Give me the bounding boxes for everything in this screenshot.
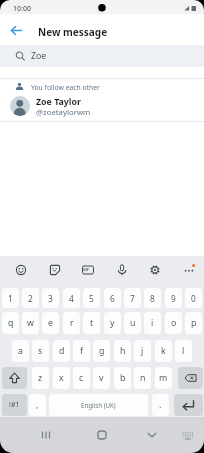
staticText: 2 xyxy=(28,293,33,304)
staticText: f xyxy=(80,345,84,357)
staticText: i xyxy=(151,317,154,329)
button[interactable]: 0 xyxy=(185,288,202,308)
staticText: n xyxy=(140,372,146,384)
staticText: w xyxy=(27,317,34,329)
button[interactable]: 5 xyxy=(83,288,100,308)
staticText: h xyxy=(120,345,126,357)
staticText: You follow each other xyxy=(31,83,100,92)
staticText: a xyxy=(18,345,23,357)
staticText: r xyxy=(70,317,74,329)
button[interactable]: c xyxy=(73,367,90,389)
button[interactable]: s xyxy=(32,340,49,362)
button[interactable] xyxy=(114,262,130,278)
staticText: 9 xyxy=(171,293,176,304)
button[interactable]: !#1 xyxy=(2,394,27,416)
button[interactable]: a xyxy=(12,340,29,362)
button[interactable]: r xyxy=(63,312,80,334)
staticText: 7 xyxy=(130,293,135,304)
staticText: b xyxy=(120,372,126,384)
button[interactable]: f xyxy=(73,340,90,362)
staticText: Zoe Taylor xyxy=(36,96,81,108)
staticText: Zoe xyxy=(31,50,47,62)
button[interactable]: u xyxy=(124,312,141,334)
staticText: u xyxy=(130,317,136,329)
button[interactable]: v xyxy=(93,367,110,389)
button[interactable]: z xyxy=(32,367,49,389)
button[interactable]: k xyxy=(155,340,172,362)
button[interactable]: l xyxy=(175,340,192,362)
staticText: c xyxy=(79,372,84,384)
staticText: x xyxy=(59,372,64,384)
button[interactable]: You follow each other xyxy=(0,79,204,95)
staticText: v xyxy=(99,372,104,384)
staticText: m xyxy=(159,372,168,384)
staticText: d xyxy=(59,345,65,357)
button[interactable] xyxy=(90,423,114,447)
staticText: 1 xyxy=(8,293,13,304)
staticText: g xyxy=(99,345,105,357)
staticText: English (UK) xyxy=(81,401,116,409)
button[interactable]: x xyxy=(53,367,70,389)
staticText: 4 xyxy=(69,293,74,304)
button[interactable]: Zoe xyxy=(0,45,204,67)
button[interactable]: . xyxy=(152,394,169,416)
staticText: q xyxy=(8,317,14,329)
button[interactable]: 8 xyxy=(144,288,161,308)
button[interactable]: d xyxy=(53,340,70,362)
button[interactable]: b xyxy=(114,367,131,389)
button[interactable]: e xyxy=(42,312,59,334)
button[interactable]: 6 xyxy=(104,288,121,308)
button[interactable] xyxy=(6,21,27,40)
button[interactable] xyxy=(178,367,203,389)
staticText: y xyxy=(110,317,115,329)
button[interactable]: , xyxy=(29,394,46,416)
button[interactable]: m xyxy=(155,367,172,389)
staticText: 3 xyxy=(48,293,53,304)
staticText: j xyxy=(141,345,144,357)
button[interactable]: Zoe Taylor xyxy=(0,95,204,121)
button[interactable] xyxy=(181,262,197,278)
button[interactable]: i xyxy=(144,312,161,334)
staticText: 8 xyxy=(150,293,155,304)
button[interactable]: 7 xyxy=(124,288,141,308)
staticText: o xyxy=(171,317,177,329)
button[interactable]: q xyxy=(2,312,19,334)
button[interactable]: 4 xyxy=(63,288,80,308)
staticText: 0 xyxy=(191,293,196,304)
button[interactable]: p xyxy=(185,312,202,334)
staticText: p xyxy=(191,317,197,329)
button[interactable]: English (UK) xyxy=(49,394,148,416)
button[interactable] xyxy=(13,262,29,278)
button[interactable]: n xyxy=(134,367,151,389)
button[interactable]: 2 xyxy=(22,288,39,308)
button[interactable] xyxy=(47,262,63,278)
staticText: . xyxy=(159,399,162,411)
button[interactable]: h xyxy=(114,340,131,362)
button[interactable] xyxy=(80,262,96,278)
staticText: GIF xyxy=(83,267,89,272)
button[interactable] xyxy=(174,394,203,416)
button[interactable] xyxy=(34,423,58,447)
button[interactable]: y xyxy=(104,312,121,334)
button[interactable]: g xyxy=(93,340,110,362)
staticText: 6 xyxy=(110,293,115,304)
button[interactable]: 3 xyxy=(42,288,59,308)
button[interactable]: 9 xyxy=(165,288,182,308)
button[interactable] xyxy=(2,367,27,389)
staticText: s xyxy=(38,345,43,357)
staticText: z xyxy=(38,372,43,384)
button[interactable] xyxy=(179,426,197,444)
button[interactable]: w xyxy=(22,312,39,334)
staticText: , xyxy=(36,399,39,411)
staticText: t xyxy=(90,317,94,329)
button[interactable] xyxy=(147,262,163,278)
button[interactable] xyxy=(140,423,164,447)
button[interactable]: 1 xyxy=(2,288,19,308)
button[interactable]: o xyxy=(165,312,182,334)
staticText: l xyxy=(182,345,185,357)
staticText: !#1 xyxy=(9,400,20,410)
staticText: New message xyxy=(38,25,108,39)
staticText: k xyxy=(161,345,166,357)
button[interactable]: j xyxy=(134,340,151,362)
button[interactable]: t xyxy=(83,312,100,334)
